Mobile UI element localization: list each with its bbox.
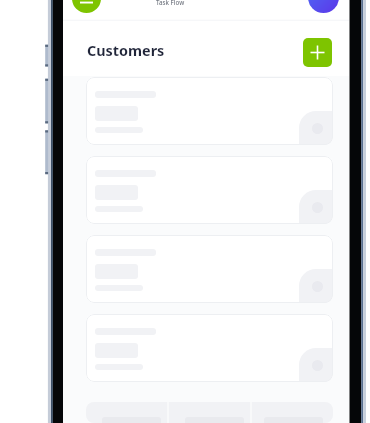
button[interactable]: Add customer [303, 38, 332, 67]
staticText: Task Flow [156, 0, 185, 6]
button[interactable]: Profile [308, 0, 339, 13]
button[interactable]: Menu [72, 0, 101, 13]
staticText: KS [317, 0, 331, 3]
button[interactable] [86, 156, 333, 224]
button[interactable] [86, 314, 333, 382]
button[interactable]: Tab 2 [169, 402, 250, 423]
button[interactable] [86, 77, 333, 145]
button[interactable] [86, 235, 333, 303]
button[interactable]: Tab 3 [252, 402, 333, 423]
button[interactable]: Tab 1 [86, 402, 167, 423]
staticText: Customers [87, 41, 165, 61]
